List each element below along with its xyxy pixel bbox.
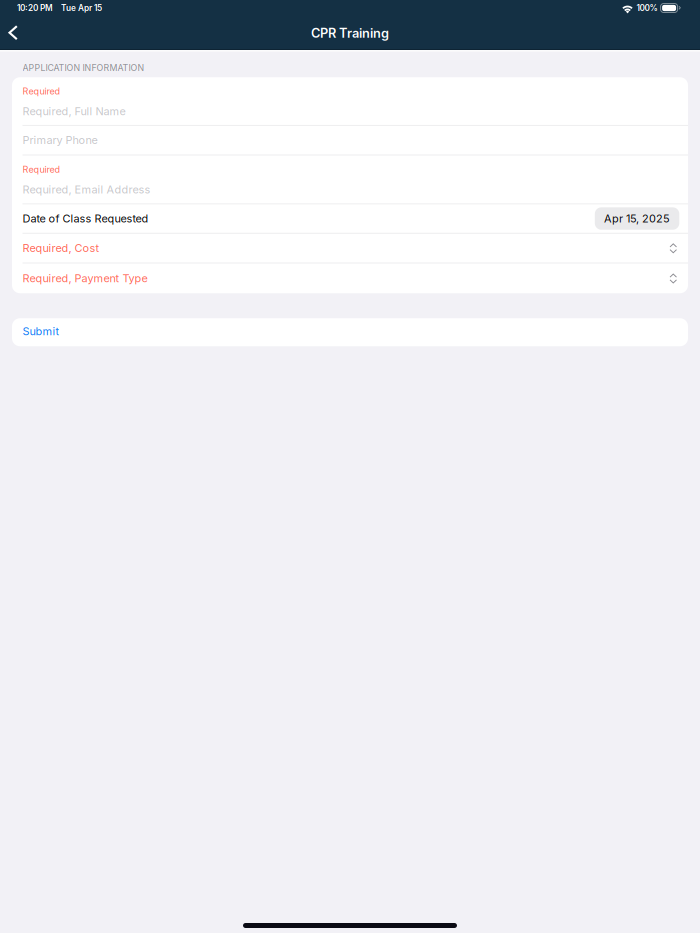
button[interactable]: Back: [0, 16, 32, 49]
staticText: Submit: [22, 325, 59, 338]
staticText: 10:20 PM: [17, 3, 53, 13]
button[interactable]: Required: [12, 155, 688, 203]
staticText: Required, Full Name: [22, 105, 125, 118]
staticText: Required: [22, 86, 60, 97]
staticText: Required, Cost: [22, 241, 99, 255]
staticText: Tue Apr 15: [61, 3, 102, 13]
staticText: APPLICATION INFORMATION: [22, 63, 144, 73]
button[interactable]: Submit: [12, 318, 688, 346]
staticText: Required, Payment Type: [22, 272, 147, 285]
staticText: Required: [22, 164, 60, 175]
button[interactable]: Primary Phone: [12, 126, 688, 155]
staticText: Primary Phone: [22, 133, 97, 147]
staticText: Required, Email Address: [22, 183, 150, 196]
staticText: Apr 15, 2025: [604, 212, 670, 225]
staticText: Date of Class Requested: [22, 212, 148, 225]
staticText: 100%: [637, 3, 658, 13]
button[interactable]: Apr 15, 2025: [595, 207, 679, 230]
staticText: CPR Training: [311, 25, 389, 41]
button[interactable]: Required: [12, 77, 688, 125]
button[interactable]: Required, Payment Type: [12, 263, 688, 293]
button[interactable]: Required, Cost: [12, 233, 688, 263]
